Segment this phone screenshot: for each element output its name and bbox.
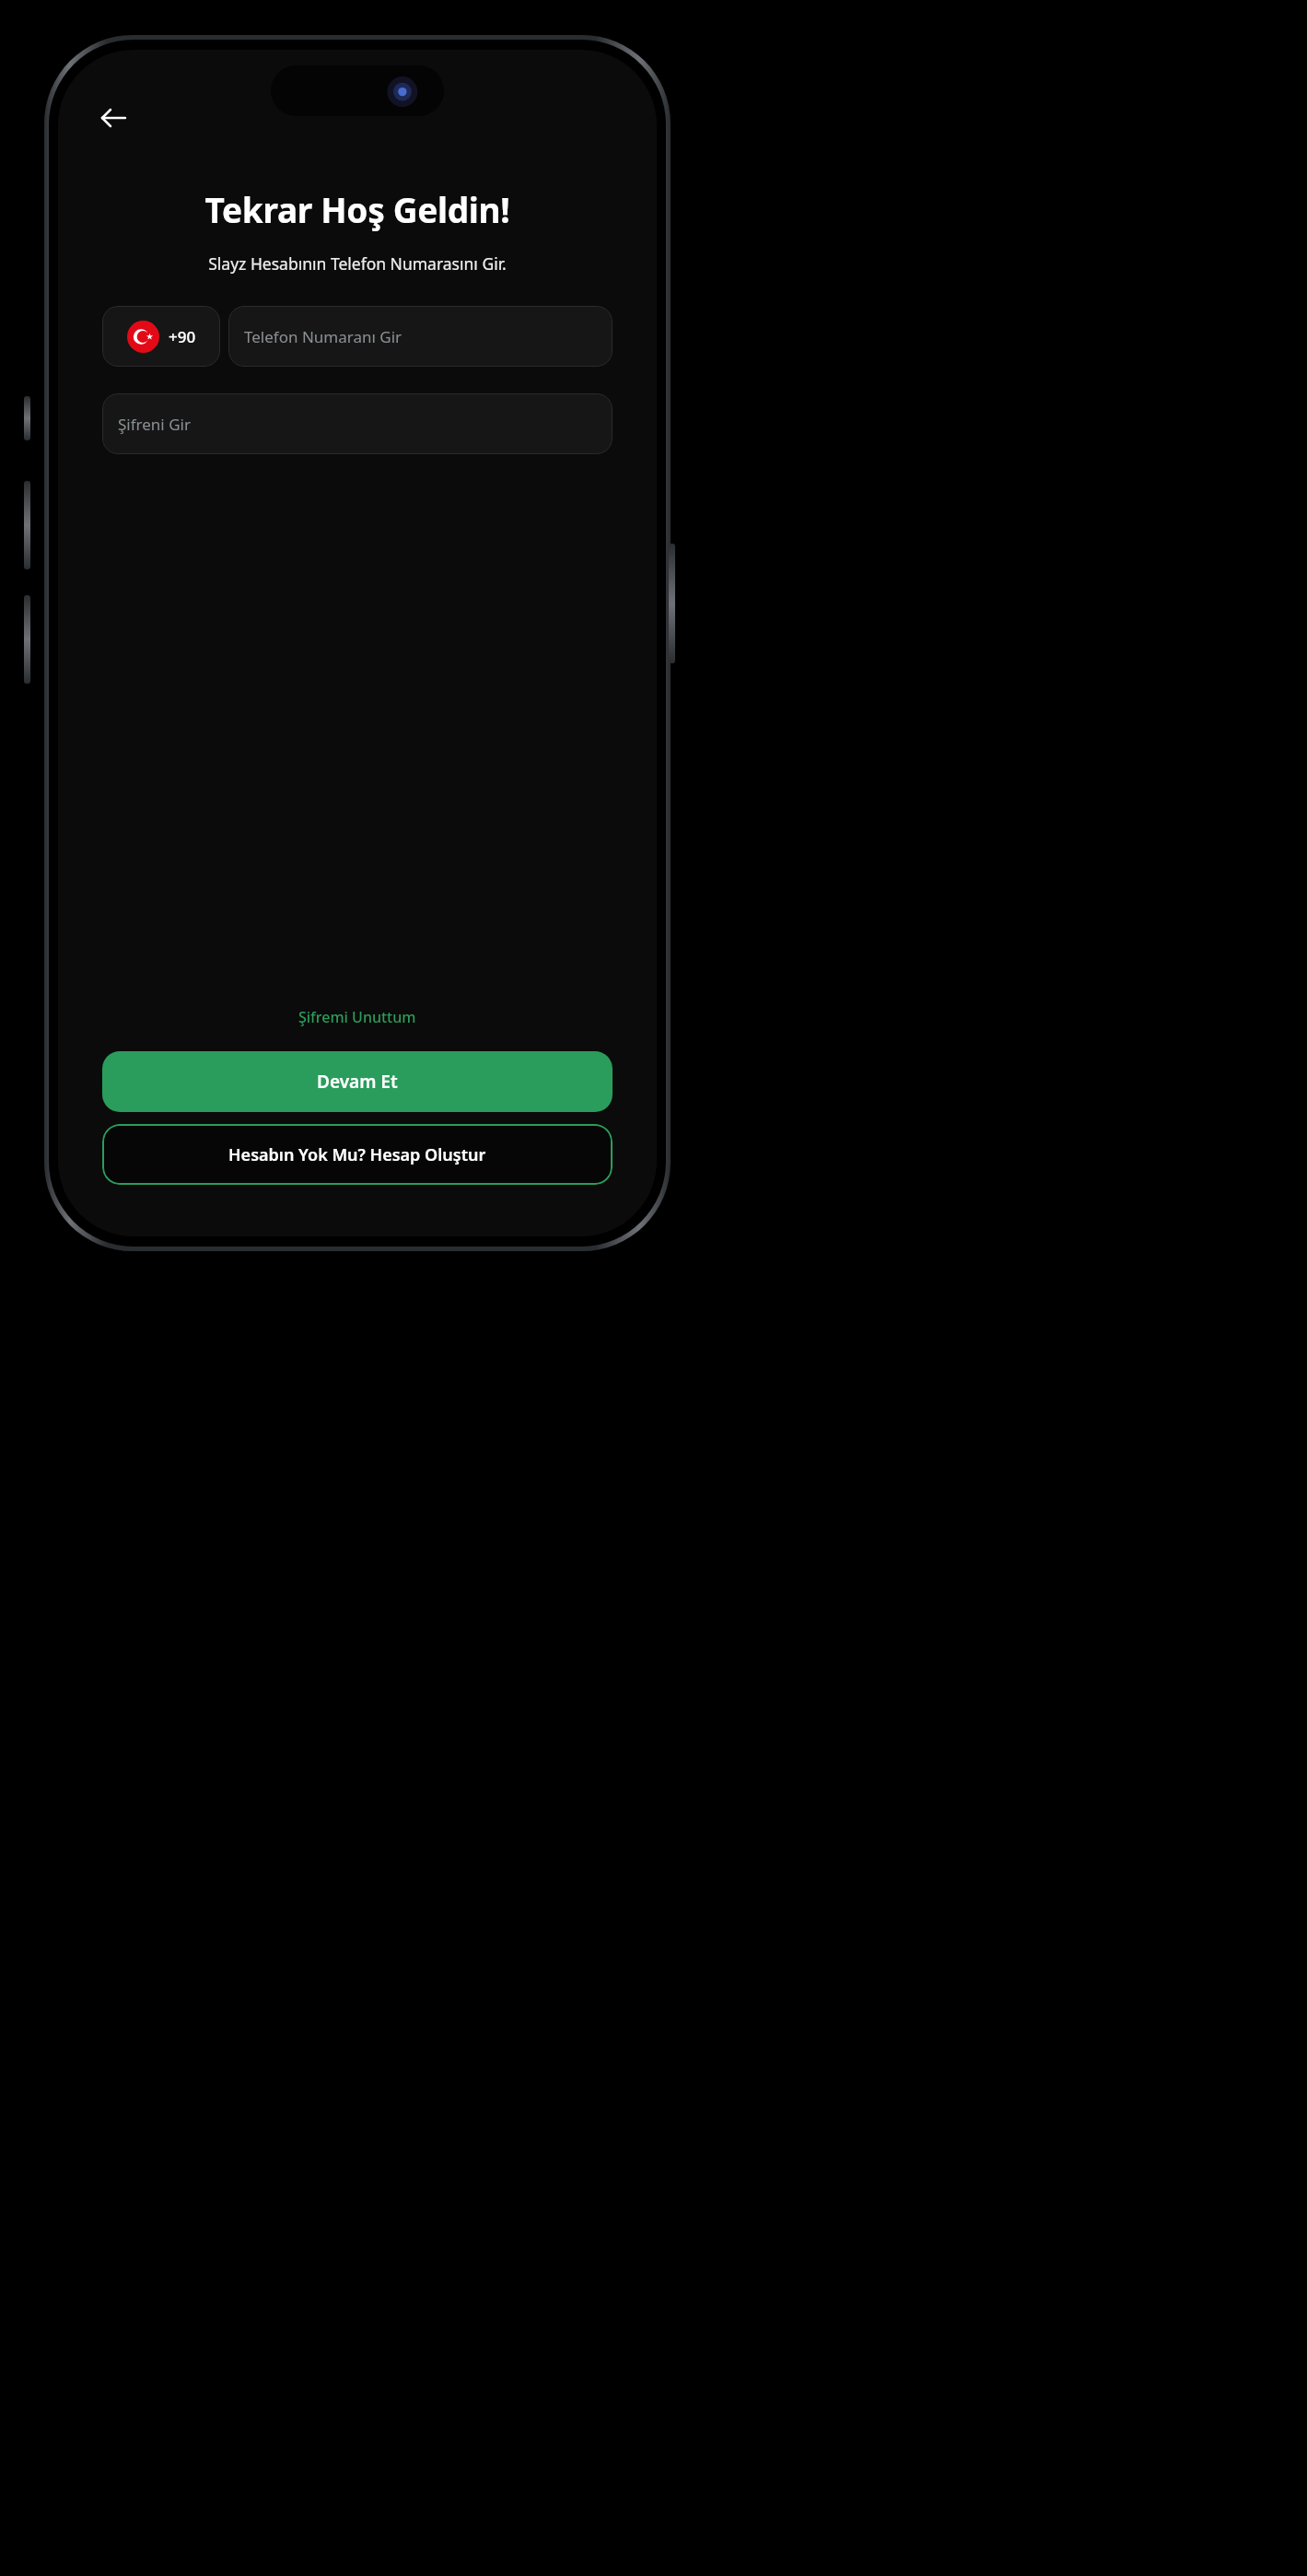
- staticText: Tekrar Hoş Geldin!: [58, 186, 657, 232]
- button[interactable]: Telefon Numaranı Gir: [228, 306, 613, 367]
- staticText: Slayz Hesabının Telefon Numarasını Gir.: [58, 252, 657, 275]
- button[interactable]: Şifremi Unuttum: [289, 1003, 426, 1031]
- button[interactable]: +90: [102, 306, 220, 367]
- button[interactable]: Şifreni Gir: [102, 393, 613, 454]
- staticText: Devam Et: [317, 1070, 398, 1094]
- staticText: Şifremi Unuttum: [298, 1007, 416, 1027]
- button[interactable]: Back: [89, 94, 137, 142]
- staticText: Hesabın Yok Mu? Hesap Oluştur: [228, 1143, 486, 1166]
- staticText: +90: [169, 326, 196, 347]
- staticText: Telefon Numaranı Gir: [244, 326, 403, 347]
- staticText: Şifreni Gir: [118, 414, 191, 435]
- button[interactable]: Devam Et: [102, 1051, 613, 1112]
- button[interactable]: Hesabın Yok Mu? Hesap Oluştur: [102, 1124, 613, 1185]
